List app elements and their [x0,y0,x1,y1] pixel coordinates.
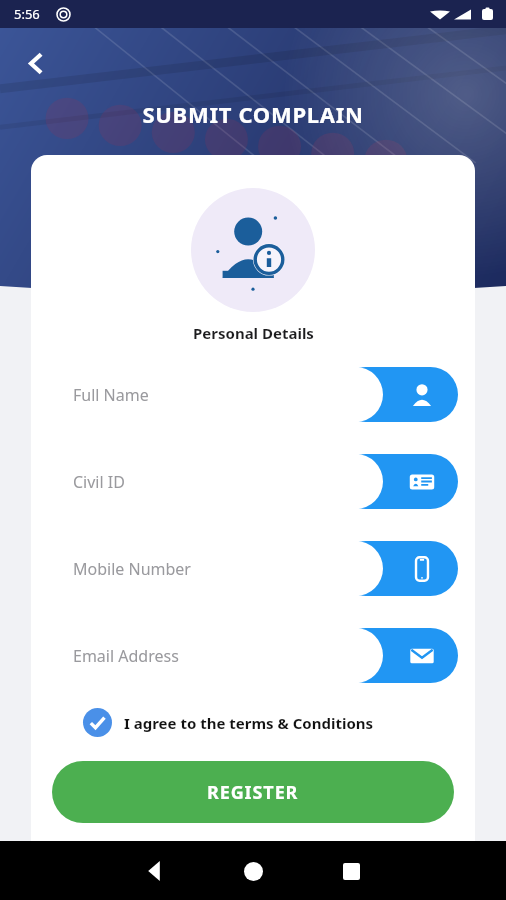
staticText: REGISTER [207,780,299,805]
staticText: 5:56 [14,5,40,23]
staticText: Full Name [73,384,149,406]
button[interactable]: Email Address [52,628,458,683]
button[interactable]: Home [231,849,275,893]
staticText: Civil ID [73,471,125,493]
staticText: Mobile Number [73,558,191,580]
button[interactable]: Recents [329,849,373,893]
staticText: SUBMIT COMPLAIN [0,99,506,129]
button[interactable]: REGISTER [52,761,454,823]
button[interactable]: Full Name [52,367,458,422]
button[interactable]: Mobile Number [52,541,458,596]
button[interactable]: Civil ID [52,454,458,509]
button[interactable]: Back [133,849,177,893]
button[interactable]: I agree to the terms & Conditions [83,708,455,737]
staticText: Personal Details [193,323,314,343]
button[interactable]: Back [13,40,59,86]
staticText: I agree to the terms & Conditions [124,713,374,733]
staticText: Email Address [73,645,179,667]
